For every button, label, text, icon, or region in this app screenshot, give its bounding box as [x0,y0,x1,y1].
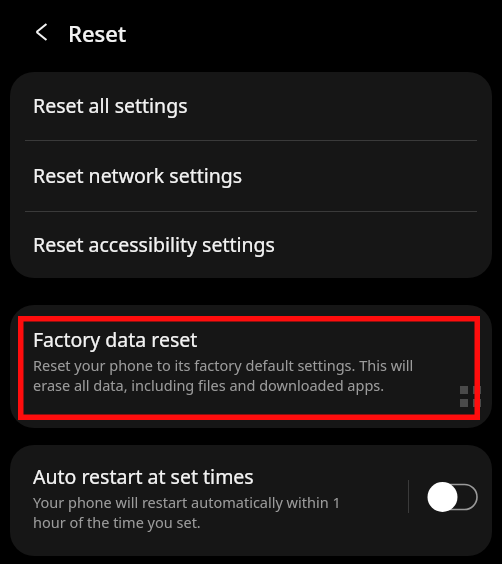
staticText: Reset accessibility settings [33,233,275,257]
button[interactable]: Auto restart at set times toggle [424,477,482,517]
staticText: Your phone will restart automatically wi… [33,492,341,532]
staticText: Reset [68,18,127,48]
staticText: Auto restart at set times [33,465,254,489]
button[interactable]: Reset network settings [10,141,492,211]
button[interactable]: Reset accessibility settings [10,212,492,278]
button[interactable]: Factory data reset [10,305,492,428]
staticText: Reset your phone to its factory default … [33,355,414,395]
button[interactable]: Reset all settings [10,72,492,140]
button[interactable]: Back [18,10,62,54]
button[interactable]: Auto restart at set times [10,445,492,556]
staticText: Reset all settings [33,94,188,118]
staticText: Reset network settings [33,164,243,188]
staticText: Factory data reset [33,328,198,352]
